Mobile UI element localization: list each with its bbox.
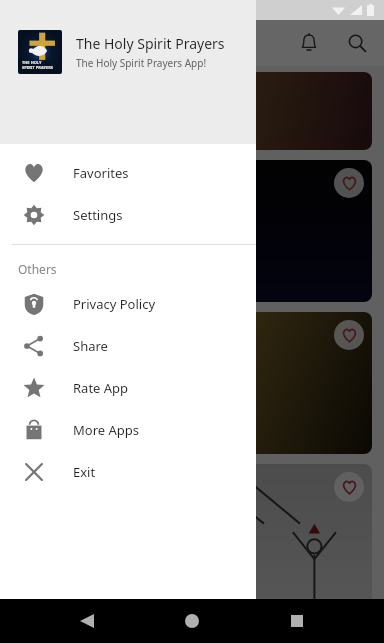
staticText: THE HOLY <box>22 60 42 65</box>
staticText: The Holy Spirit Prayers App! <box>76 56 207 70</box>
button[interactable]: Home <box>174 603 210 639</box>
button[interactable] <box>12 72 372 150</box>
button[interactable]: …d's Direction and <box>12 464 372 606</box>
staticText: Share <box>73 337 108 355</box>
button[interactable]: Privacy Policy <box>0 283 256 325</box>
button[interactable]: Favorites <box>0 152 256 194</box>
staticText: Others <box>18 261 57 277</box>
button[interactable]: THE HOLY <box>0 0 256 144</box>
button[interactable]: Notifications <box>296 30 322 56</box>
button[interactable]: Settings <box>0 194 256 236</box>
staticText: …Spirit <box>22 373 75 393</box>
staticText: The Holy Spirit Prayers <box>76 34 225 53</box>
button[interactable]: Favorite <box>334 472 364 502</box>
button[interactable] <box>0 20 384 599</box>
button[interactable]: Favorite <box>12 160 372 302</box>
staticText: Exit <box>73 463 96 481</box>
button[interactable]: Favorite <box>334 320 364 350</box>
button[interactable]: More Apps <box>0 409 256 451</box>
button[interactable]: Back <box>69 603 105 639</box>
staticText: More Apps <box>73 421 140 439</box>
button[interactable]: Exit <box>0 451 256 493</box>
staticText: Settings <box>73 206 123 224</box>
button[interactable]: Search <box>344 30 370 56</box>
staticText: Privacy Policy <box>73 295 156 313</box>
button[interactable]: Favorite <box>334 168 364 198</box>
button[interactable]: Recent apps <box>279 603 315 639</box>
button[interactable]: Share <box>0 325 256 367</box>
staticText: SPIRIT PRAYERS <box>22 65 53 70</box>
staticText: Rate App <box>73 379 129 397</box>
staticText: Favorites <box>73 164 129 182</box>
button[interactable]: Rate App <box>0 367 256 409</box>
button[interactable]: …Spirit <box>12 312 372 454</box>
